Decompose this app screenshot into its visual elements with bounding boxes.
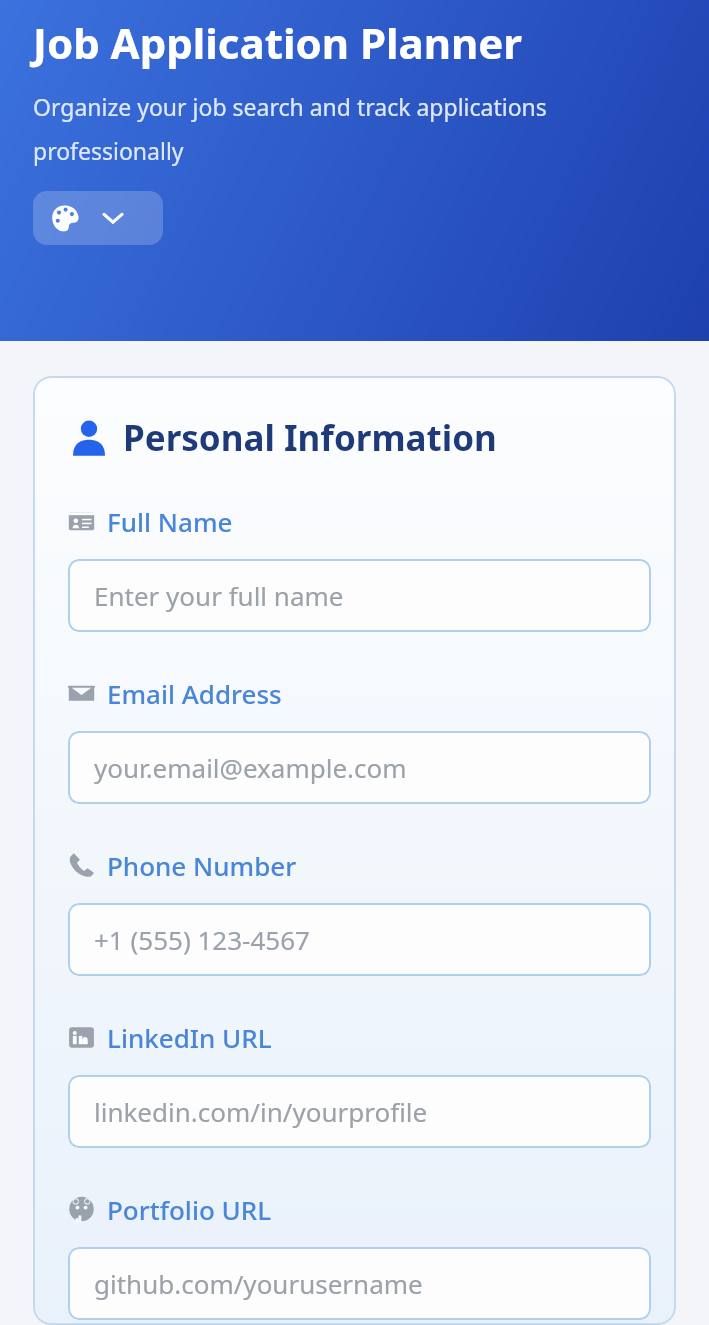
- staticText: linkedin.com/in/yourprofile: [94, 1094, 428, 1129]
- staticText: Personal Information: [123, 414, 497, 462]
- button[interactable]: Enter your full name: [68, 559, 651, 632]
- staticText: github.com/yourusername: [94, 1266, 423, 1301]
- staticText: Job Application Planner: [33, 14, 523, 71]
- button[interactable]: linkedin.com/in/yourprofile: [68, 1075, 651, 1148]
- staticText: Enter your full name: [94, 578, 344, 613]
- staticText: Organize your job search and track appli…: [33, 91, 681, 166]
- staticText: Phone Number: [107, 848, 297, 883]
- staticText: +1 (555) 123-4567: [94, 922, 310, 957]
- button[interactable]: your.email@example.com: [68, 731, 651, 804]
- staticText: Portfolio URL: [107, 1192, 272, 1227]
- button[interactable]: Change theme: [33, 191, 163, 245]
- staticText: Email Address: [107, 676, 282, 711]
- button[interactable]: github.com/yourusername: [68, 1247, 651, 1320]
- button[interactable]: +1 (555) 123-4567: [68, 903, 651, 976]
- staticText: Full Name: [107, 504, 233, 539]
- staticText: your.email@example.com: [94, 750, 407, 785]
- staticText: LinkedIn URL: [107, 1020, 272, 1055]
